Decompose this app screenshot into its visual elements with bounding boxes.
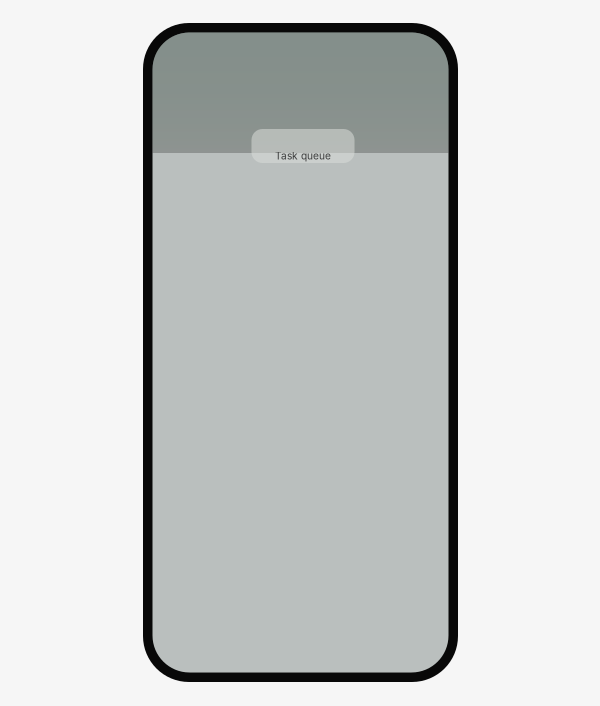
staticText: Task queue	[275, 150, 331, 162]
